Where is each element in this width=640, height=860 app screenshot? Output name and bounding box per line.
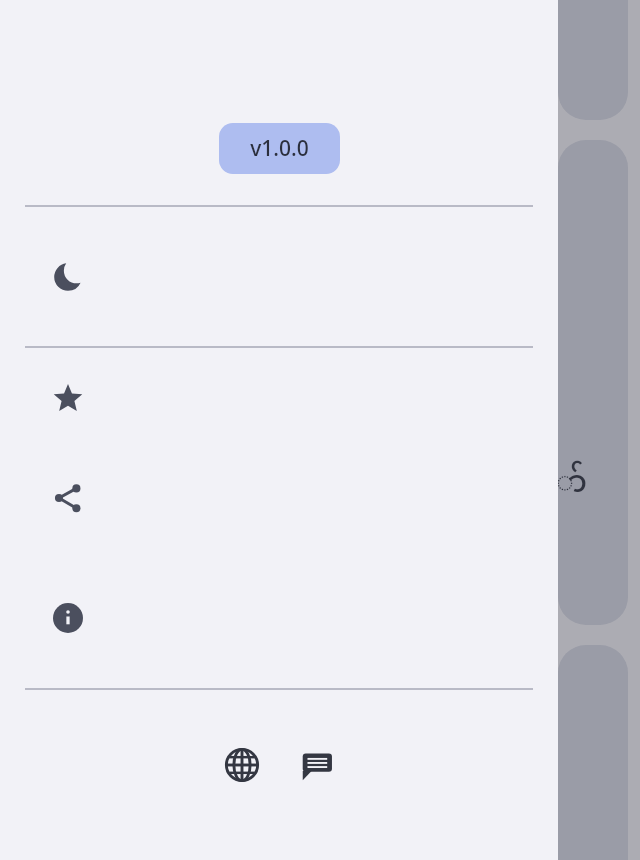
other: Dark mode	[50, 259, 86, 295]
button[interactable]: Share	[0, 448, 558, 548]
other: Rate this app	[50, 380, 86, 416]
other: About	[50, 600, 86, 636]
button[interactable]: About	[0, 548, 558, 688]
button[interactable]: Feedback	[286, 734, 348, 796]
button[interactable]: Dark mode	[0, 207, 558, 346]
staticText: v1.0.0	[250, 134, 309, 163]
staticText: ာ်	[556, 452, 588, 518]
button[interactable]: Rate this app	[0, 348, 558, 448]
button[interactable]: v1.0.0	[219, 123, 340, 174]
button[interactable]: Website	[211, 734, 273, 796]
other: Share	[50, 480, 86, 516]
